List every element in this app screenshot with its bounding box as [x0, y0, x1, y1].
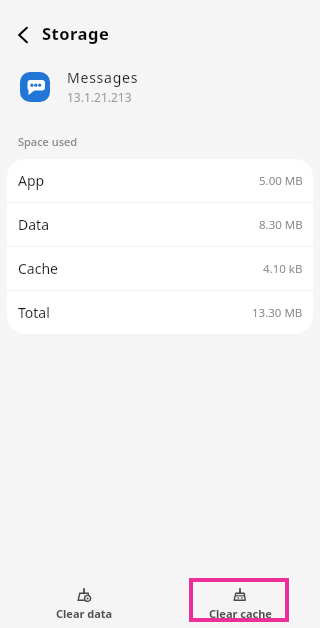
button[interactable]: Total	[7, 291, 313, 334]
button[interactable]: Data	[7, 203, 313, 246]
staticText: 8.30 MB	[259, 217, 303, 233]
staticText: Clear data	[56, 606, 113, 621]
staticText: Total	[18, 303, 50, 322]
staticText: Clear cache	[209, 606, 272, 621]
staticText: 4.10 kB	[263, 261, 303, 277]
staticText: App	[18, 171, 45, 190]
button[interactable]: Cache	[7, 247, 313, 290]
button[interactable]: App	[7, 159, 313, 202]
button[interactable]: Clear cache	[160, 582, 320, 628]
staticText: Storage	[42, 22, 110, 44]
staticText: Messages	[67, 68, 139, 87]
staticText: Space used	[18, 134, 78, 149]
staticText: 13.1.21.213	[67, 89, 132, 105]
button[interactable]: Messages	[20, 68, 320, 105]
staticText: Cache	[18, 259, 58, 278]
button[interactable]	[0, 10, 46, 56]
button[interactable]: Clear data	[4, 582, 164, 628]
staticText: 13.30 MB	[252, 305, 303, 321]
staticText: 5.00 MB	[259, 173, 303, 189]
staticText: Data	[18, 215, 49, 234]
